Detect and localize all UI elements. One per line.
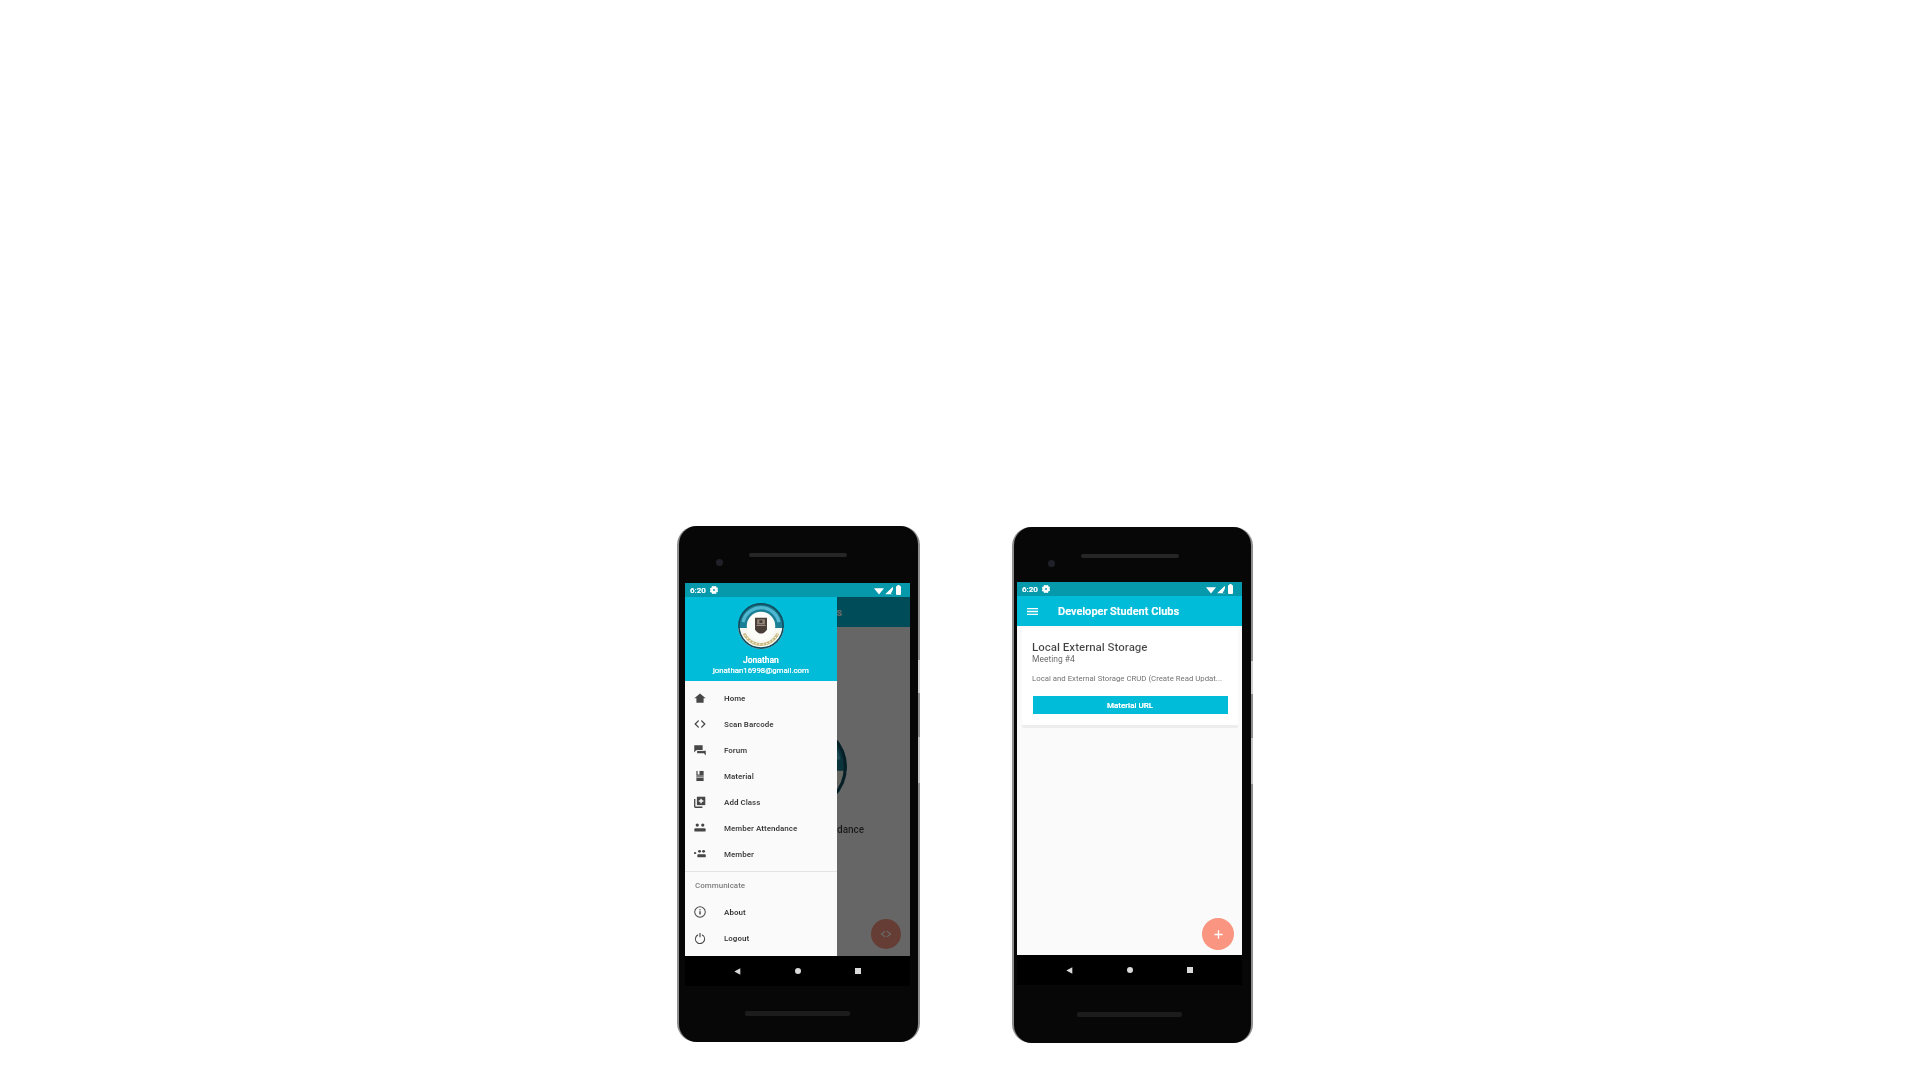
button[interactable]: Logout [685,925,837,951]
staticText: jonathan16998@gmail.com [713,666,809,675]
button[interactable]: Scan barcode [871,919,901,949]
button[interactable]: Add [1202,918,1234,950]
button[interactable]: Home [1121,961,1139,979]
button[interactable]: Close navigation drawer [685,597,910,956]
button[interactable]: Open navigation drawer [1022,601,1043,622]
staticText: 6:20 [1022,585,1038,594]
staticText: Developer Student Clubs [1058,605,1180,618]
staticText: Scan Barcode [724,720,774,729]
button[interactable]: Material [685,763,837,789]
button[interactable]: Forum [685,737,837,763]
button[interactable]: Material URL [1033,696,1228,714]
button[interactable]: Jonathan [685,597,837,681]
staticText: Member Attendance [773,824,865,836]
staticText: Home [724,694,746,703]
button[interactable]: Member [685,841,837,867]
button[interactable]: Recent apps [1181,961,1199,979]
button[interactable]: About [685,899,837,925]
button[interactable]: Home [789,962,807,980]
button[interactable]: Scan Barcode [685,711,837,737]
staticText: Material [724,772,754,781]
staticText: Local and External Storage CRUD (Create … [1032,674,1223,683]
staticText: Communicate [695,881,746,890]
staticText: Add Class [724,798,761,807]
button[interactable]: Local External Storage [1022,628,1238,725]
button[interactable]: Add Class [685,789,837,815]
button[interactable]: Home [685,685,837,711]
staticText: Member Attendance [724,824,798,833]
staticText: About [724,908,746,917]
button[interactable]: Recent apps [849,962,867,980]
staticText: Logout [724,934,750,943]
button[interactable]: Back [1060,961,1078,979]
staticText: 6:20 [690,586,706,595]
staticText: Material URL [1107,701,1154,710]
staticText: Forum [724,746,748,755]
staticText: Local External Storage [1032,640,1148,653]
staticText: Jonathan [743,655,779,665]
button[interactable]: Back [728,962,746,980]
staticText: Member [724,850,755,859]
staticText: Meeting #4 [1032,654,1075,664]
button[interactable]: Member Attendance [685,815,837,841]
staticText: Developer Student Clubs [721,606,843,619]
